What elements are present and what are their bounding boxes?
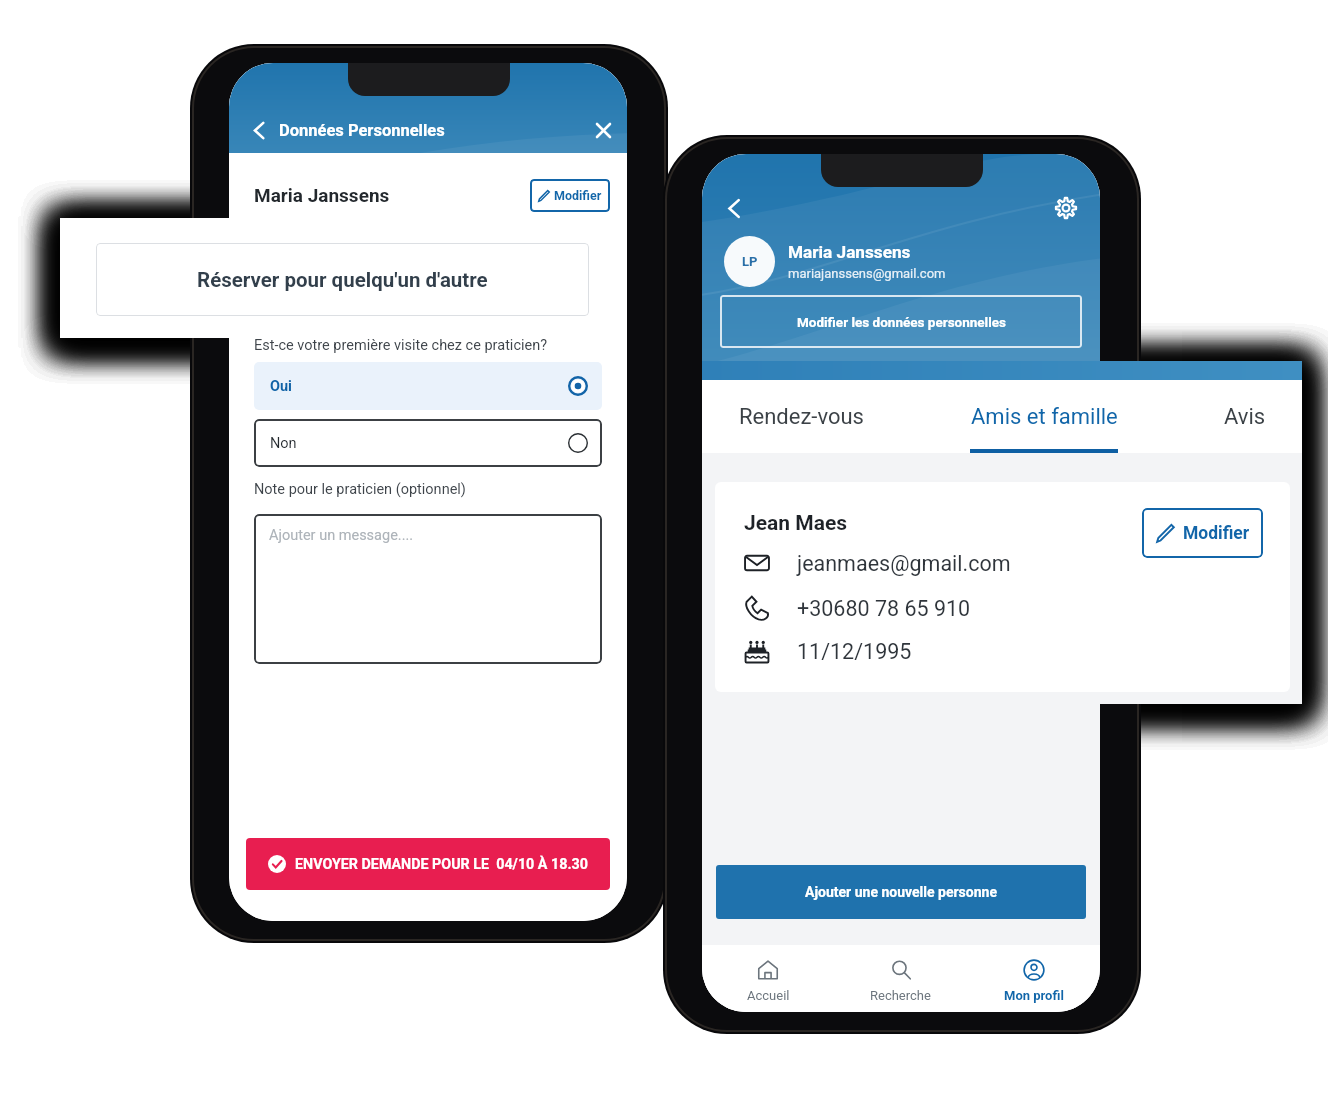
staticText: Ajouter un message.... [269, 527, 414, 544]
button[interactable]: ENVOYER DEMANDE POUR LE 04/10 À 18.30 [246, 838, 610, 890]
staticText: Amis et famille [849, 410, 953, 428]
button[interactable]: Mon profil [967, 945, 1100, 1012]
button[interactable]: Modifier [530, 179, 610, 212]
button[interactable]: Rendez-vous [711, 380, 891, 453]
staticText: Mon profil [1004, 988, 1064, 1003]
staticText: Ajouter une nouvelle personne [805, 884, 997, 900]
staticText: ENVOYER DEMANDE POUR LE 04/10 À 18.30 [295, 856, 588, 873]
staticText: +30680 78 65 910 [797, 596, 971, 621]
staticText: Oui [270, 378, 292, 395]
staticText: mariajanssens@gmail.com [788, 266, 946, 281]
button[interactable]: Back [243, 114, 275, 146]
staticText: Maria Janssens [788, 242, 911, 262]
button[interactable]: Recherche [834, 945, 967, 1012]
staticText: Recherche [870, 988, 931, 1003]
button[interactable]: Ajouter un message.... [254, 514, 602, 664]
staticText: Avis [1224, 404, 1266, 430]
button[interactable]: Rendez-vous [702, 381, 834, 457]
staticText: 11/12/1995 [797, 639, 912, 664]
button[interactable]: Settings [1050, 192, 1082, 224]
button[interactable]: Accueil [702, 945, 834, 1012]
staticText: Accueil [747, 988, 790, 1003]
staticText: Est-ce votre première visite chez ce pra… [254, 337, 548, 354]
button[interactable]: Réserver pour quelqu'un d'autre [96, 243, 589, 316]
staticText: Données Personnelles [279, 121, 445, 140]
staticText: Rendez-vous [739, 404, 864, 430]
staticText: Amis et famille [971, 404, 1118, 430]
staticText: Modifier [1183, 523, 1250, 544]
staticText: Modifier [554, 188, 602, 203]
button[interactable]: Amis et famille [954, 380, 1134, 453]
staticText: Modifier les données personnelles [797, 314, 1006, 330]
staticText: Non [270, 435, 297, 452]
button[interactable]: Non [254, 419, 602, 467]
button[interactable]: Close [588, 115, 618, 145]
staticText: LP [742, 254, 758, 269]
staticText: Rendez-vous [724, 410, 813, 428]
staticText: Réserver pour quelqu'un d'autre [197, 268, 488, 292]
button[interactable]: Avis [967, 381, 1100, 457]
button[interactable]: Avis [1155, 380, 1328, 453]
button[interactable]: Oui [254, 362, 602, 410]
button[interactable]: Amis et famille [834, 381, 967, 457]
staticText: Jean Maes [744, 511, 848, 536]
staticText: Maria Janssens [254, 184, 390, 206]
button[interactable]: Modifier [1142, 508, 1263, 558]
staticText: Avis [1019, 410, 1049, 428]
staticText: jeanmaes@gmail.com [797, 551, 1011, 576]
button[interactable]: Modifier les données personnelles [720, 295, 1082, 348]
button[interactable]: Back [718, 192, 750, 224]
button[interactable]: Ajouter une nouvelle personne [716, 865, 1086, 919]
staticText: Note pour le praticien (optionnel) [254, 481, 466, 498]
